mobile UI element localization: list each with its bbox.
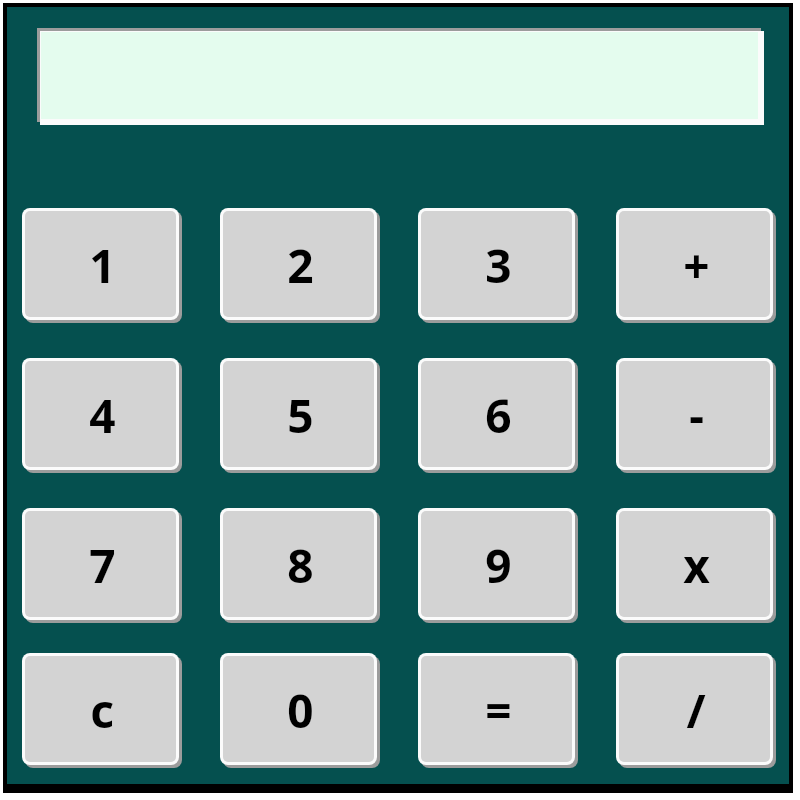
staticText: 0 bbox=[287, 679, 314, 742]
staticText: 3 bbox=[485, 234, 512, 297]
staticText: 8 bbox=[287, 534, 314, 597]
staticText: 2 bbox=[287, 234, 314, 297]
button[interactable]: 7 bbox=[22, 508, 182, 623]
button[interactable]: 4 bbox=[22, 358, 182, 473]
staticText: 6 bbox=[485, 384, 512, 447]
staticText: 4 bbox=[89, 384, 116, 447]
button[interactable]: 2 bbox=[220, 208, 380, 323]
staticText: = bbox=[485, 679, 512, 742]
staticText: + bbox=[683, 234, 710, 297]
button[interactable]: x bbox=[616, 508, 776, 623]
button[interactable]: + bbox=[616, 208, 776, 323]
staticText: 7 bbox=[89, 534, 116, 597]
button[interactable]: 5 bbox=[220, 358, 380, 473]
staticText: 9 bbox=[485, 534, 512, 597]
button[interactable]: 1 bbox=[22, 208, 182, 323]
button[interactable]: = bbox=[418, 653, 578, 768]
staticText: 1 bbox=[89, 234, 116, 297]
button[interactable]: 8 bbox=[220, 508, 380, 623]
staticText: / bbox=[686, 679, 706, 742]
staticText: 5 bbox=[287, 384, 314, 447]
button[interactable]: 0 bbox=[220, 653, 380, 768]
button[interactable]: 3 bbox=[418, 208, 578, 323]
button[interactable]: 6 bbox=[418, 358, 578, 473]
button[interactable]: 9 bbox=[418, 508, 578, 623]
button[interactable]: - bbox=[616, 358, 776, 473]
button[interactable]: c bbox=[22, 653, 182, 768]
staticText: x bbox=[683, 534, 710, 597]
button[interactable]: / bbox=[616, 653, 776, 768]
staticText: c bbox=[90, 679, 114, 742]
staticText: - bbox=[689, 384, 704, 447]
